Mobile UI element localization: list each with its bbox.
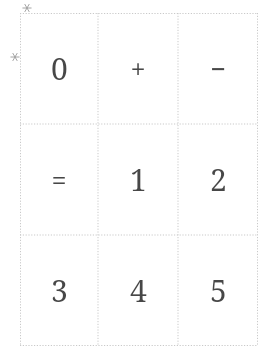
staticText: = (51, 161, 67, 198)
button[interactable]: Key 2 (178, 124, 258, 235)
button[interactable]: Key 5 (178, 235, 258, 346)
button[interactable]: Key + (98, 13, 178, 124)
staticText: 0 (51, 48, 68, 89)
staticText: 1 (130, 159, 147, 200)
staticText: 3 (51, 270, 68, 311)
button[interactable]: Key − (178, 13, 258, 124)
button[interactable]: Key 4 (98, 235, 178, 346)
button[interactable]: Key = (20, 124, 98, 235)
staticText: 2 (210, 159, 227, 200)
button[interactable]: Key 0 (20, 13, 98, 124)
staticText: 4 (130, 270, 147, 311)
button[interactable]: Key 1 (98, 124, 178, 235)
button[interactable]: Key 3 (20, 235, 98, 346)
staticText: + (130, 50, 146, 87)
staticText: − (210, 50, 226, 87)
staticText: 5 (210, 270, 227, 311)
